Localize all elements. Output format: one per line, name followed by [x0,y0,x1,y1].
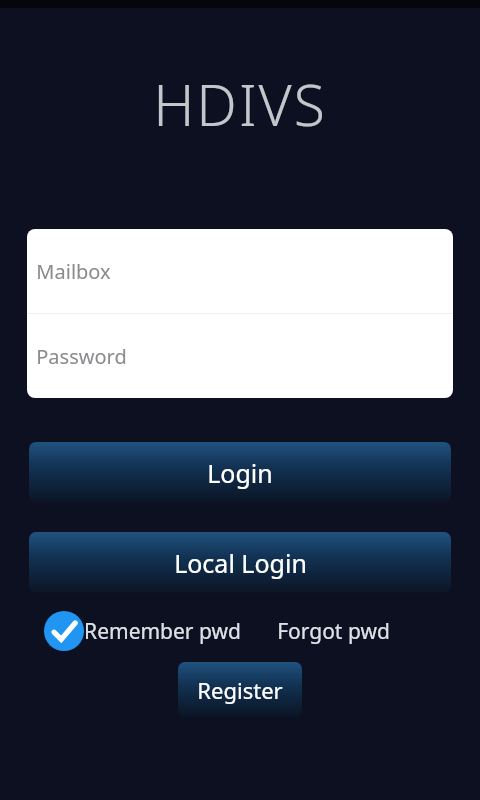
other: Remember password checkbox [44,611,84,651]
button[interactable]: Remember password checkbox [44,611,241,651]
staticText: HDIVS [153,65,327,143]
staticText: Local Login [174,546,307,580]
staticText: Remember pwd [84,617,241,646]
staticText: Mailbox [36,258,111,285]
button[interactable]: Password [27,314,453,398]
button[interactable]: Login [29,442,451,503]
button[interactable]: Forgot pwd [277,617,390,646]
button[interactable]: Register [178,662,302,717]
staticText: Login [207,456,273,490]
staticText: Password [36,343,127,370]
button[interactable]: Mailbox [27,229,453,313]
staticText: Register [197,675,283,705]
button[interactable]: Local Login [29,532,451,593]
staticText: Forgot pwd [277,617,390,646]
